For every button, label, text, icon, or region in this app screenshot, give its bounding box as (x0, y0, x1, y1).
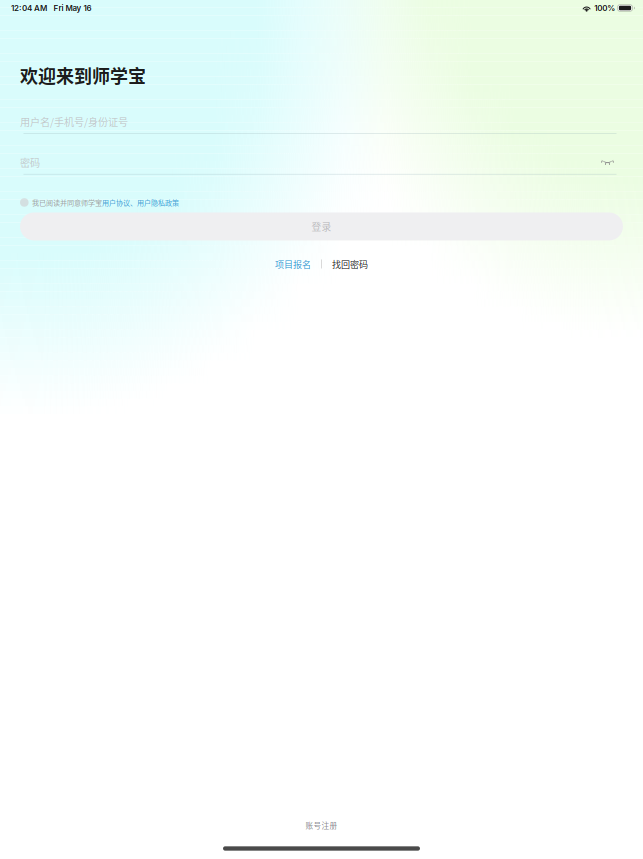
button[interactable]: 账号注册 (0, 818, 643, 832)
staticText: 我已阅读并同意师学宝 (32, 197, 102, 207)
staticText: 项目报名 (275, 257, 311, 270)
staticText: 用户名/手机号/身份证号 (20, 114, 128, 129)
button[interactable]: 登录 (20, 212, 623, 240)
staticText: 100% (594, 3, 615, 13)
button[interactable]: Show password (593, 151, 622, 173)
staticText: 用户协议、用户隐私政策 (102, 197, 179, 207)
staticText: 密码 (20, 155, 40, 170)
button[interactable]: 项目报名 (275, 257, 311, 270)
staticText: 登录 (311, 219, 331, 233)
staticText: Fri May 16 (53, 3, 91, 13)
staticText: 找回密码 (332, 257, 368, 270)
staticText: 欢迎来到师学宝 (20, 62, 146, 88)
staticText: 账号注册 (305, 820, 337, 831)
button[interactable]: 我已阅读并同意师学宝 (0, 195, 643, 209)
staticText: 12:04 AM (11, 3, 47, 13)
button[interactable]: 找回密码 (332, 257, 368, 270)
